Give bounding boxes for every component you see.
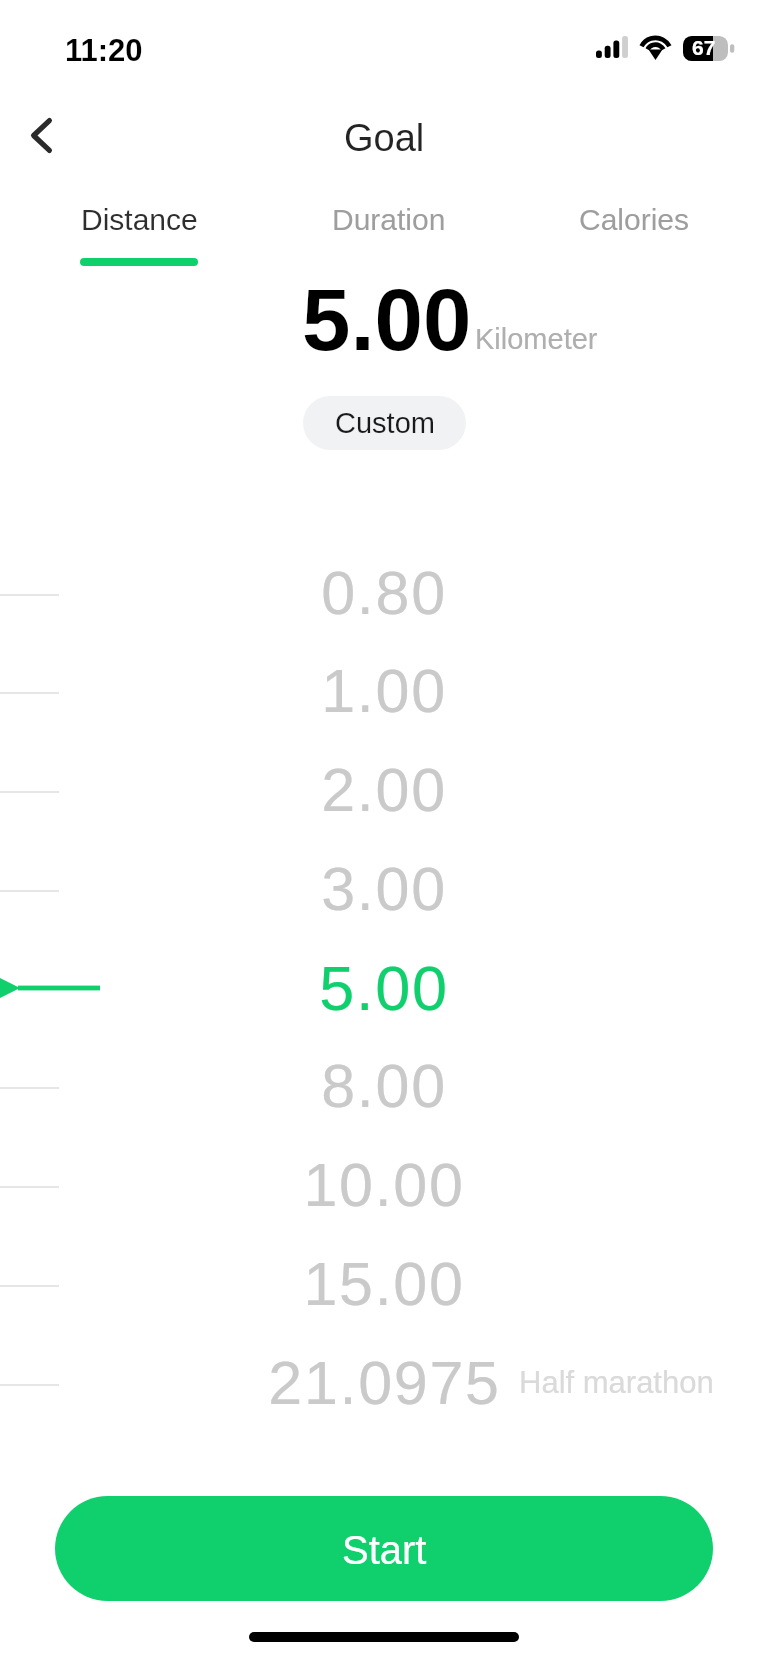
button[interactable]: Calories <box>577 190 692 276</box>
button[interactable]: 1.00 <box>0 641 768 740</box>
staticText: 8.00 <box>321 1052 447 1120</box>
button[interactable]: Back <box>12 106 70 164</box>
staticText: Calories <box>579 203 690 237</box>
button[interactable]: Distance <box>78 190 200 276</box>
button[interactable]: Start <box>55 1496 713 1601</box>
staticText: 3.00 <box>321 855 447 923</box>
staticText: 5.00 <box>319 953 449 1023</box>
button[interactable]: 2.00 <box>0 740 768 839</box>
staticText: 10.00 <box>303 1151 465 1219</box>
staticText: 5.00 <box>302 271 472 368</box>
staticText: Kilometer <box>475 323 598 355</box>
staticText: Distance <box>81 203 198 237</box>
button[interactable]: 8.00 <box>0 1036 768 1135</box>
staticText: Duration <box>332 203 446 237</box>
button[interactable]: Custom <box>303 396 466 450</box>
button[interactable]: 5.00 <box>0 938 768 1037</box>
staticText: 2.00 <box>321 756 447 824</box>
staticText: Goal <box>344 117 425 159</box>
staticText: Custom <box>335 407 435 439</box>
staticText: 15.00 <box>303 1250 465 1318</box>
button[interactable]: 3.00 <box>0 839 768 938</box>
button[interactable]: 0.80 <box>0 543 768 642</box>
button[interactable]: 10.00 <box>0 1135 768 1234</box>
staticText: 0.80 <box>321 559 447 627</box>
button[interactable]: 15.00 <box>0 1234 768 1333</box>
button[interactable]: Duration <box>330 190 448 276</box>
staticText: 21.0975 <box>268 1349 501 1417</box>
staticText: 67 <box>692 36 716 59</box>
staticText: Start <box>342 1528 427 1573</box>
staticText: 1.00 <box>321 657 447 725</box>
staticText: 11:20 <box>65 33 143 68</box>
staticText: Half marathon <box>519 1365 714 1400</box>
button[interactable]: 21.0975 <box>0 1333 768 1432</box>
